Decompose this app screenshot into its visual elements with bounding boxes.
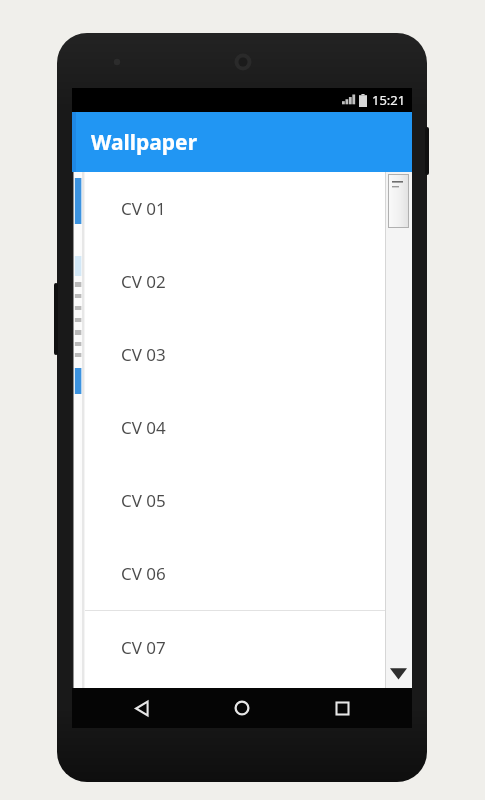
staticText: CV 02 (121, 270, 166, 293)
staticText: CV 03 (121, 343, 166, 366)
staticText: CV 04 (121, 416, 166, 439)
staticText: CV 06 (121, 562, 166, 585)
button[interactable]: CV 05 (85, 464, 385, 537)
button[interactable]: CV 03 (85, 318, 385, 391)
button[interactable]: CV 07 (85, 611, 385, 684)
staticText: CV 05 (121, 489, 166, 512)
staticText: CV 01 (121, 197, 166, 220)
button[interactable]: CV 02 (85, 245, 385, 318)
button[interactable]: CV 04 (85, 391, 385, 464)
button[interactable]: Recent apps (312, 688, 372, 728)
staticText: Wallpaper (91, 128, 198, 157)
button[interactable]: CV 06 (85, 537, 385, 610)
staticText: CV 07 (121, 636, 166, 659)
button[interactable]: CV 01 (85, 172, 385, 245)
staticText: 15:21 (372, 91, 406, 109)
button[interactable]: Back (112, 688, 172, 728)
button[interactable]: Home (212, 688, 272, 728)
button[interactable]: Scroll bar (385, 172, 412, 688)
